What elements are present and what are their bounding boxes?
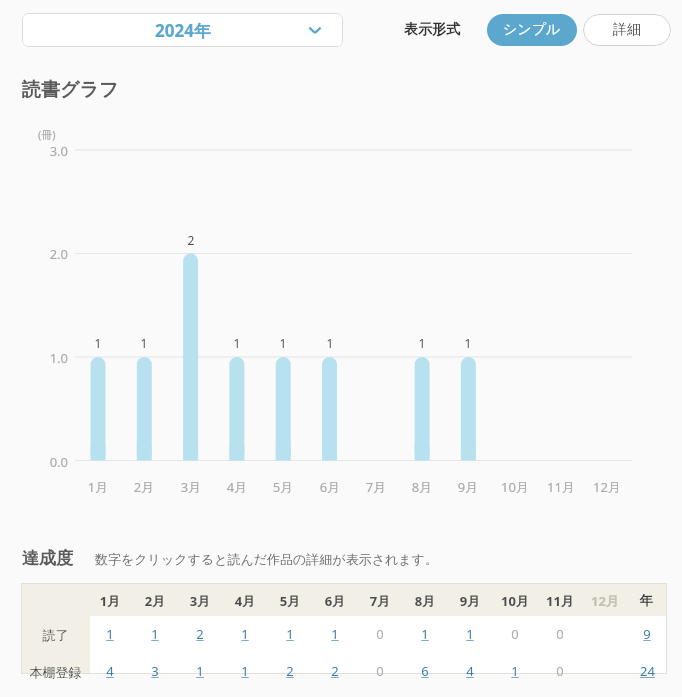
staticText: 7月: [353, 478, 399, 496]
staticText: 1: [421, 625, 429, 643]
staticText: 1: [196, 662, 204, 680]
button[interactable]: 6: [409, 660, 441, 682]
button[interactable]: 1: [94, 623, 126, 645]
button[interactable]: 4: [454, 660, 486, 682]
button[interactable]: 1: [229, 623, 261, 645]
staticText: 1.0: [36, 349, 68, 367]
staticText: 4月: [214, 478, 260, 496]
staticText: 11月: [536, 592, 584, 610]
staticText: 10月: [491, 592, 539, 610]
staticText: 1: [271, 335, 295, 351]
staticText: 3.0: [36, 142, 68, 160]
staticText: 数字をクリックすると読んだ作品の詳細が表示されます。: [95, 551, 438, 567]
button[interactable]: シンプル: [487, 14, 577, 46]
staticText: 1: [241, 662, 249, 680]
staticText: 達成度: [22, 548, 73, 569]
staticText: 12月: [584, 478, 630, 496]
staticText: 11月: [538, 478, 584, 496]
staticText: 6月: [311, 592, 359, 610]
button[interactable]: 9: [630, 623, 664, 645]
button[interactable]: 1: [139, 623, 171, 645]
staticText: 1月: [75, 478, 121, 496]
staticText: 2: [331, 662, 339, 680]
staticText: 表示形式: [404, 21, 460, 39]
button[interactable]: 1: [499, 660, 531, 682]
staticText: 6: [421, 662, 429, 680]
staticText: 1: [511, 662, 519, 680]
staticText: 12月: [581, 592, 629, 610]
staticText: 2月: [131, 592, 179, 610]
staticText: (冊): [38, 127, 56, 142]
staticText: 2月: [121, 478, 167, 496]
staticText: 5月: [266, 592, 314, 610]
button[interactable]: 2: [184, 623, 216, 645]
staticText: 2024年: [155, 19, 211, 42]
staticText: 1: [225, 335, 249, 351]
button[interactable]: 1: [229, 660, 261, 682]
button[interactable]: 1: [274, 623, 306, 645]
button[interactable]: 1: [184, 660, 216, 682]
button[interactable]: 詳細: [583, 14, 671, 46]
staticText: 1: [86, 335, 110, 351]
staticText: 1月: [86, 592, 134, 610]
staticText: 1: [106, 625, 114, 643]
button[interactable]: 1: [409, 623, 441, 645]
button[interactable]: 24: [630, 660, 664, 682]
staticText: 0: [376, 625, 384, 643]
staticText: 8月: [399, 478, 445, 496]
staticText: 6月: [307, 478, 353, 496]
staticText: 0: [556, 662, 564, 680]
staticText: 年: [628, 592, 664, 608]
staticText: 読了: [21, 627, 90, 643]
staticText: 詳細: [613, 21, 641, 39]
staticText: 2: [179, 232, 203, 248]
staticText: 9月: [445, 478, 491, 496]
staticText: 1: [132, 335, 156, 351]
staticText: 4月: [221, 592, 269, 610]
staticText: 4: [466, 662, 474, 680]
staticText: 0.0: [36, 453, 68, 471]
staticText: 10月: [492, 478, 538, 496]
staticText: シンプル: [503, 21, 561, 39]
staticText: 4: [106, 662, 114, 680]
staticText: 2: [196, 625, 204, 643]
staticText: 0: [376, 662, 384, 680]
staticText: 3: [151, 662, 159, 680]
button[interactable]: 1: [319, 623, 351, 645]
button[interactable]: 2: [274, 660, 306, 682]
button[interactable]: 2024年: [22, 13, 343, 47]
button[interactable]: 1: [454, 623, 486, 645]
button[interactable]: 2: [319, 660, 351, 682]
staticText: 読書グラフ: [22, 78, 119, 102]
staticText: 本棚登録: [21, 664, 90, 680]
staticText: 1: [318, 335, 342, 351]
staticText: 2.0: [36, 245, 68, 263]
staticText: 2: [286, 662, 294, 680]
staticText: 1: [410, 335, 434, 351]
staticText: 9月: [446, 592, 494, 610]
staticText: 0: [511, 625, 519, 643]
staticText: 9: [643, 625, 651, 643]
staticText: 0: [556, 625, 564, 643]
staticText: 24: [640, 662, 655, 680]
staticText: 1: [241, 625, 249, 643]
button[interactable]: 3: [139, 660, 171, 682]
staticText: 8月: [401, 592, 449, 610]
staticText: 1: [331, 625, 339, 643]
staticText: 1: [466, 625, 474, 643]
staticText: 1: [456, 335, 480, 351]
staticText: 7月: [356, 592, 404, 610]
staticText: 1: [286, 625, 294, 643]
staticText: 3月: [176, 592, 224, 610]
staticText: 5月: [260, 478, 306, 496]
staticText: 3月: [168, 478, 214, 496]
button[interactable]: 4: [94, 660, 126, 682]
staticText: 1: [151, 625, 159, 643]
